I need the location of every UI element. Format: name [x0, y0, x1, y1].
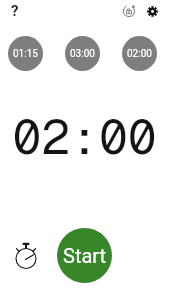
staticText: 01:15 — [13, 48, 38, 60]
button[interactable]: Add timer — [118, 0, 140, 22]
button[interactable]: 03:00 — [65, 36, 100, 71]
button[interactable]: Help — [4, 0, 26, 22]
staticText: ? — [11, 2, 19, 20]
button[interactable]: Start — [57, 228, 112, 283]
button[interactable]: 02:00 — [122, 36, 157, 71]
button[interactable]: Stopwatch — [11, 242, 41, 272]
button[interactable]: Settings — [141, 0, 163, 22]
staticText: Start — [63, 244, 107, 267]
staticText: 02:00 — [0, 106, 169, 168]
staticText: 03:00 — [70, 48, 95, 60]
button[interactable]: 01:15 — [8, 36, 43, 71]
staticText: 02:00 — [127, 48, 152, 60]
